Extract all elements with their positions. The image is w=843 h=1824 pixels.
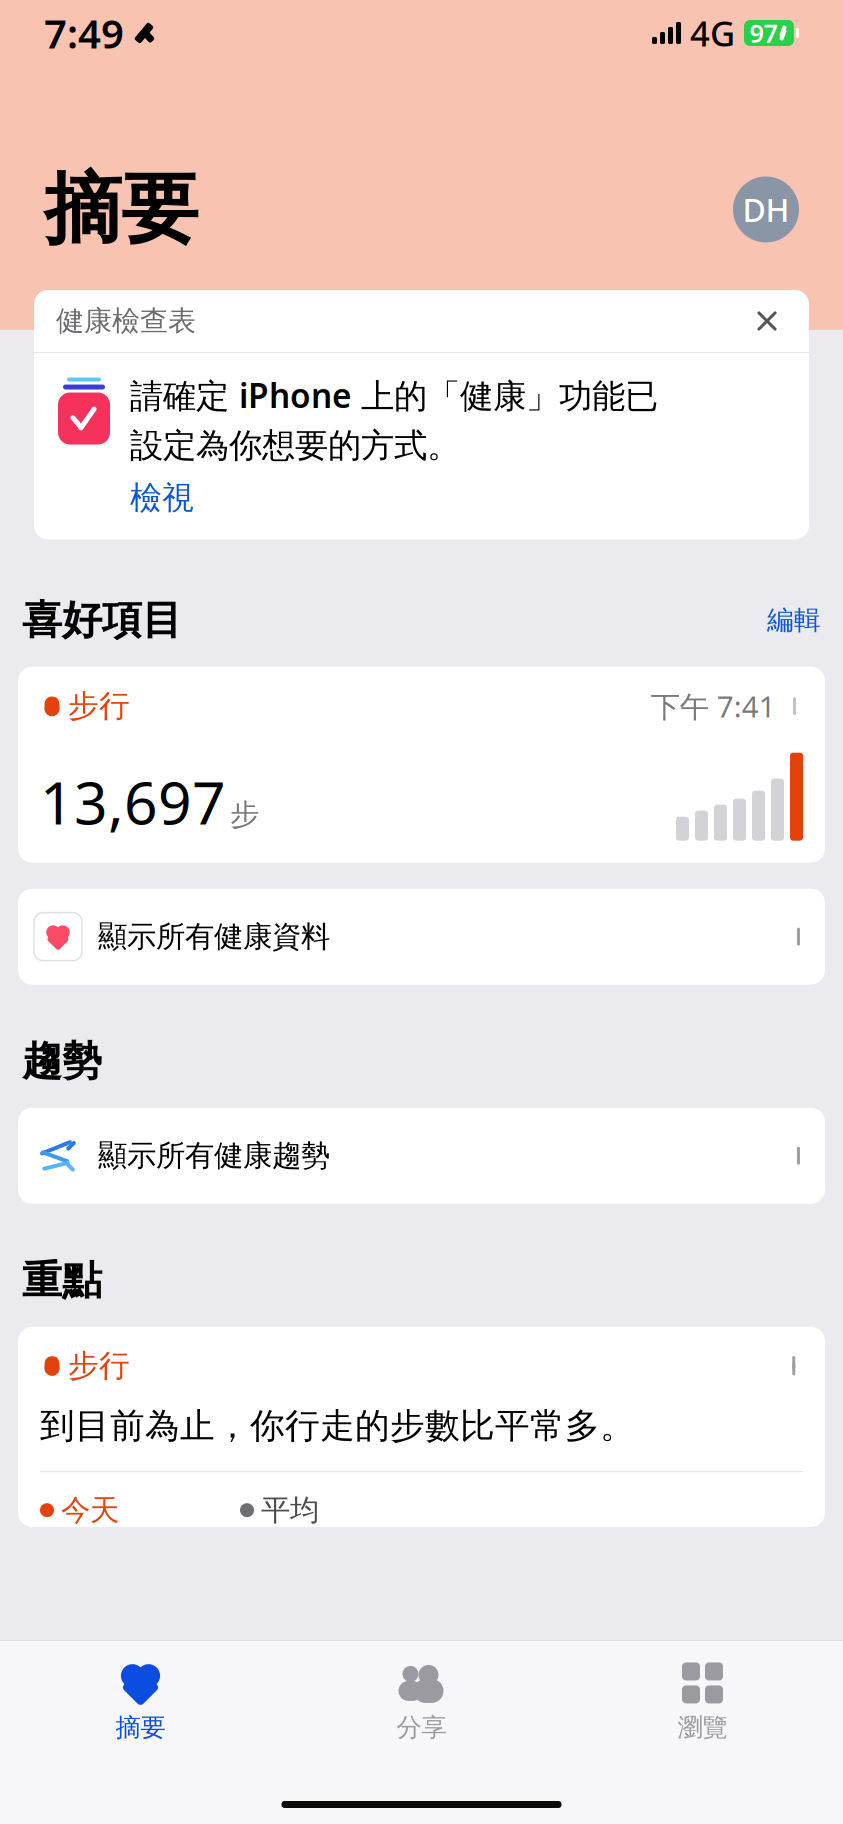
- button[interactable]: 步行: [18, 1327, 825, 1527]
- staticText: 請確定 iPhone 上的「健康」功能已: [130, 373, 658, 417]
- staticText: 摘要: [44, 162, 198, 257]
- staticText: 檢視: [130, 478, 194, 517]
- staticText: 步: [230, 797, 259, 833]
- staticText: 分享: [396, 1712, 446, 1743]
- button[interactable]: 分享: [281, 1650, 562, 1743]
- staticText: 設定為你想要的方式。: [130, 425, 460, 466]
- button[interactable]: 摘要: [0, 1650, 281, 1743]
- staticText: 7:49: [44, 6, 124, 59]
- staticText: 趨勢: [22, 1037, 102, 1086]
- staticText: 摘要: [115, 1712, 165, 1743]
- staticText: 重點: [22, 1256, 102, 1305]
- button[interactable]: 個人檔案: [733, 176, 799, 242]
- staticText: 步行: [68, 1347, 130, 1385]
- staticText: 97: [749, 16, 777, 50]
- button[interactable]: 編輯: [767, 604, 821, 636]
- staticText: 步行: [68, 687, 130, 725]
- staticText: DH: [742, 188, 789, 231]
- button[interactable]: 檢視: [130, 478, 194, 517]
- staticText: 瀏覽: [677, 1712, 727, 1743]
- button[interactable]: 顯示所有健康資料: [18, 889, 825, 985]
- staticText: 喜好項目: [22, 595, 182, 645]
- staticText: 顯示所有健康趨勢: [98, 1138, 330, 1174]
- button[interactable]: 步行: [18, 667, 825, 863]
- staticText: 健康檢查表: [56, 304, 196, 338]
- button[interactable]: 瀏覽: [562, 1650, 843, 1743]
- staticText: 編輯: [767, 604, 821, 636]
- button[interactable]: 關閉: [747, 301, 787, 341]
- staticText: 今天: [61, 1492, 119, 1528]
- staticText: 13,697: [40, 763, 226, 841]
- staticText: 4G: [690, 10, 735, 56]
- staticText: 顯示所有健康資料: [98, 919, 330, 955]
- staticText: 下午 7:41: [651, 687, 776, 726]
- button[interactable]: 顯示所有健康趨勢: [18, 1108, 825, 1204]
- staticText: 到目前為止，你行走的步數比平常多。: [40, 1405, 635, 1447]
- staticText: 平均: [261, 1492, 319, 1528]
